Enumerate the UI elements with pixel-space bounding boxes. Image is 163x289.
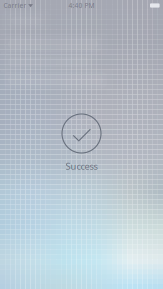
staticText: Carrier xyxy=(3,1,26,10)
staticText: 4:40 PM xyxy=(68,1,94,10)
staticText: Success xyxy=(65,160,97,172)
